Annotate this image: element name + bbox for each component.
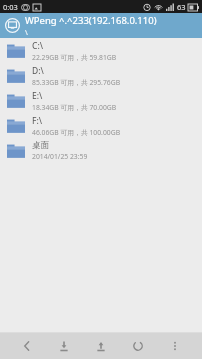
staticText: 22.29GB 可用，共 59.81GB: [32, 53, 117, 62]
button[interactable]: More options: [165, 336, 185, 356]
button[interactable]: D:\: [0, 63, 202, 88]
staticText: E:\: [32, 90, 43, 102]
button[interactable]: E:\: [0, 88, 202, 113]
staticText: 63: [177, 2, 186, 12]
staticText: 18.34GB 可用，共 70.00GB: [32, 103, 117, 112]
button[interactable]: WPeng ^.^233(192.168.0.110): [0, 13, 202, 38]
staticText: F:\: [32, 115, 43, 127]
button[interactable]: Download: [54, 336, 74, 356]
staticText: 0:03: [3, 2, 18, 12]
staticText: 桌面: [32, 140, 49, 151]
staticText: 85.33GB 可用，共 295.76GB: [32, 78, 121, 87]
staticText: 46.06GB 可用，共 100.00GB: [32, 128, 121, 137]
button[interactable]: Upload: [91, 336, 111, 356]
button[interactable]: 桌面: [0, 138, 202, 163]
staticText: \: [25, 27, 28, 37]
button[interactable]: C:\: [0, 38, 202, 63]
staticText: D:\: [32, 65, 44, 77]
staticText: WPeng ^.^233(192.168.0.110): [25, 14, 157, 27]
button[interactable]: Back: [17, 336, 37, 356]
staticText: 2014/01/25 23:59: [32, 152, 88, 161]
button[interactable]: Refresh: [128, 336, 148, 356]
staticText: C:\: [32, 40, 43, 52]
button[interactable]: F:\: [0, 113, 202, 138]
